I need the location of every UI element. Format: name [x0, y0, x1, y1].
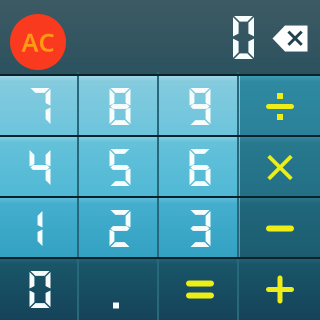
button[interactable] — [0, 259, 80, 320]
button[interactable] — [160, 259, 240, 320]
button[interactable] — [240, 198, 320, 259]
button[interactable] — [0, 76, 80, 137]
button[interactable] — [160, 198, 240, 259]
button[interactable]: AC — [10, 14, 66, 70]
button[interactable] — [240, 259, 320, 320]
button[interactable] — [240, 76, 320, 137]
button[interactable] — [80, 259, 160, 320]
button[interactable] — [160, 76, 240, 137]
button[interactable] — [80, 198, 160, 259]
button[interactable] — [240, 137, 320, 198]
button[interactable] — [0, 137, 80, 198]
button[interactable] — [160, 137, 240, 198]
button[interactable] — [80, 137, 160, 198]
staticText: AC — [21, 25, 54, 59]
button[interactable] — [0, 198, 80, 259]
button[interactable] — [80, 76, 160, 137]
button[interactable]: Delete — [272, 25, 308, 52]
